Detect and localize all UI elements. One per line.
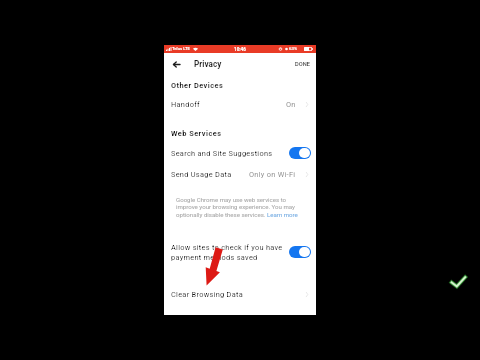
button[interactable]: DONE [289, 56, 316, 72]
button[interactable]: Toggle [289, 147, 311, 159]
other: Approved check mark [0, 0, 480, 360]
staticText: Handoff [171, 100, 200, 109]
staticText: Google Chrome may use web services to im… [176, 196, 301, 219]
staticText: Allow sites to check if you have payment… [171, 243, 283, 261]
staticText: Search and Site Suggestions [171, 149, 273, 158]
staticText: 63% [289, 46, 298, 51]
staticText: Other Devices [171, 81, 224, 90]
button[interactable]: Toggle [289, 246, 311, 258]
button[interactable]: Allow sites to check if you have payment… [164, 240, 316, 264]
staticText: 10:46 [234, 47, 246, 52]
staticText: Privacy [194, 59, 222, 69]
staticText: Send Usage Data [171, 170, 232, 179]
button[interactable]: Send Usage Data [164, 165, 316, 183]
button[interactable]: Handoff [164, 95, 316, 113]
staticText: On [286, 100, 296, 109]
button[interactable]: Search and Site Suggestions [164, 144, 316, 162]
button[interactable]: Clear Browsing Data [164, 285, 316, 303]
staticText: Web Services [171, 129, 222, 138]
staticText: DONE [295, 61, 310, 68]
button[interactable]: Back [167, 54, 185, 74]
staticText: Only on Wi-Fi [249, 170, 296, 179]
staticText: Telus LTE [172, 46, 190, 51]
staticText: Clear Browsing Data [171, 290, 243, 299]
